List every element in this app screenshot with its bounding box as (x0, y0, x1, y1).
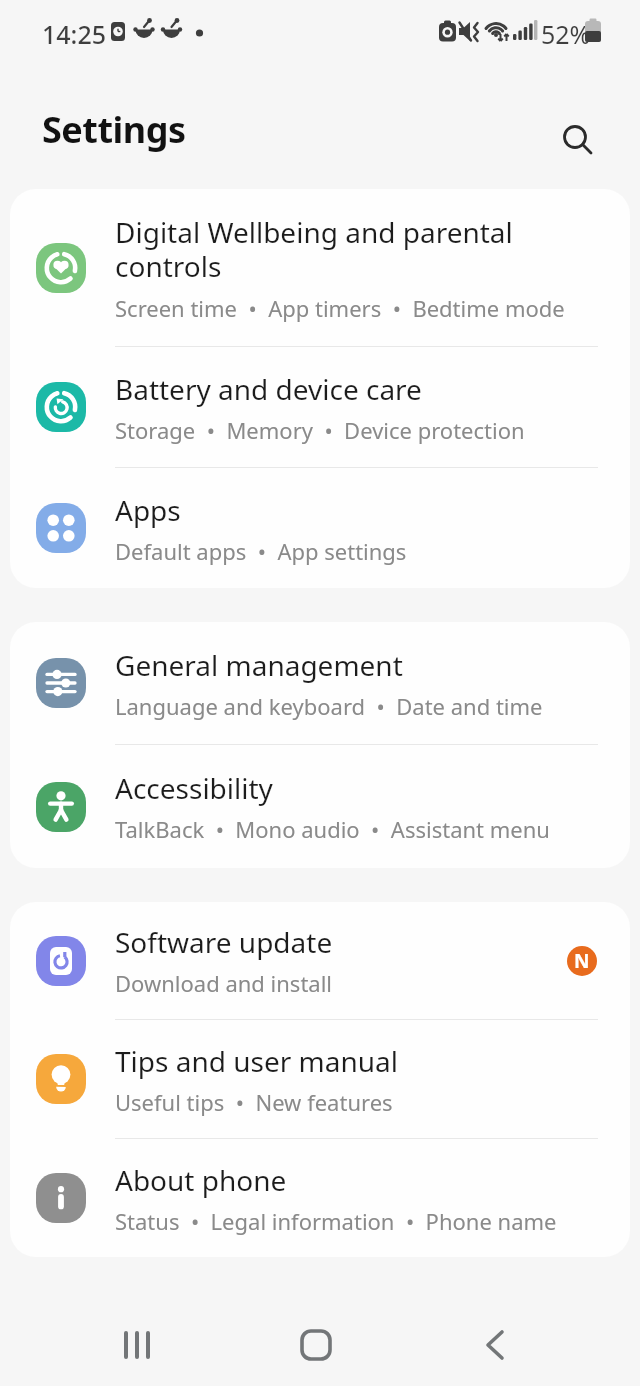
staticText: Storage • Memory • Device protection (115, 415, 525, 445)
staticText: Settings (42, 105, 186, 154)
staticText: 52% (541, 17, 591, 51)
button[interactable]: Software update (10, 902, 630, 1019)
button[interactable]: General management (10, 622, 630, 744)
staticText: Accessibility (115, 769, 273, 807)
staticText: Useful tips • New features (115, 1087, 393, 1117)
staticText: Status • Legal information • Phone name (115, 1206, 557, 1236)
button[interactable]: Digital Wellbeing and parental controls (10, 189, 630, 346)
button[interactable] (556, 118, 600, 162)
staticText: About phone (115, 1161, 287, 1199)
button[interactable]: About phone (10, 1139, 630, 1257)
button[interactable] (214, 1296, 427, 1386)
staticText: Apps (115, 491, 181, 529)
button[interactable] (0, 1296, 214, 1386)
staticText: Screen time • App timers • Bedtime mode (115, 293, 565, 323)
staticText: Digital Wellbeing and parental controls (115, 213, 513, 286)
button[interactable]: Battery and device care (10, 347, 630, 467)
staticText: Download and install (115, 968, 333, 998)
staticText: Battery and device care (115, 370, 422, 408)
staticText: Tips and user manual (115, 1042, 398, 1080)
staticText: Default apps • App settings (115, 536, 407, 566)
staticText: 14:25 (42, 17, 107, 51)
staticText: Language and keyboard • Date and time (115, 691, 543, 721)
button[interactable]: Tips and user manual (10, 1020, 630, 1138)
button[interactable] (427, 1296, 640, 1386)
staticText: TalkBack • Mono audio • Assistant menu (115, 814, 550, 844)
button[interactable]: Apps (10, 468, 630, 588)
staticText: General management (115, 646, 403, 684)
staticText: Software update (115, 923, 333, 961)
staticText: N (574, 948, 590, 974)
button[interactable]: Accessibility (10, 745, 630, 868)
